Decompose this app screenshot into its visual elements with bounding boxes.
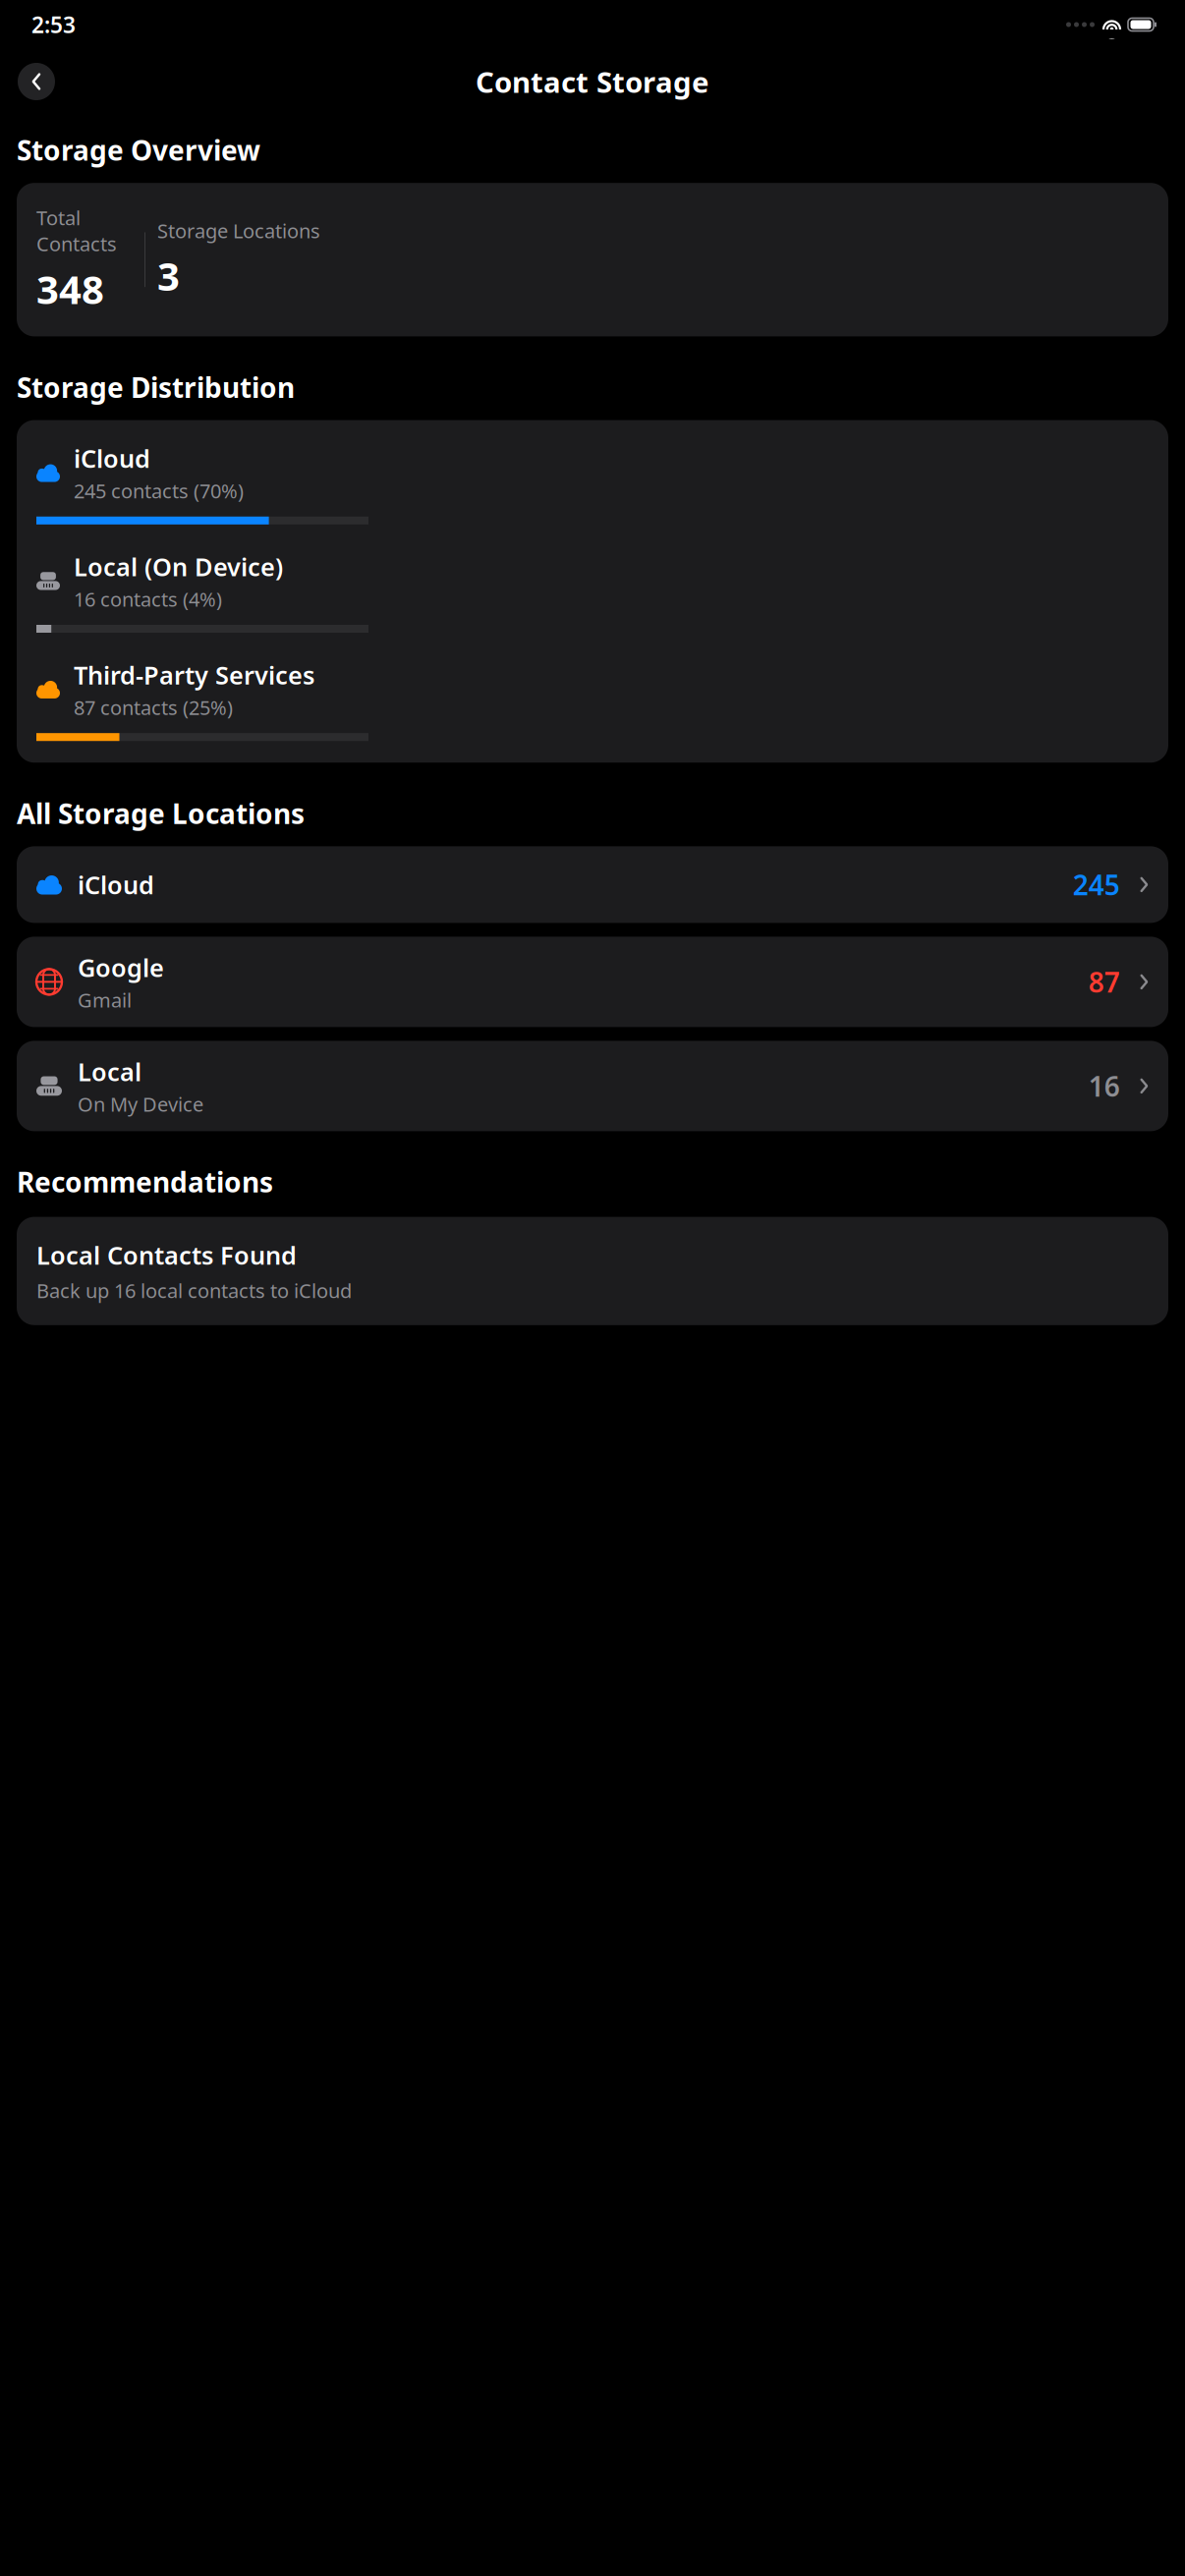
staticText: 2:53 <box>31 10 76 39</box>
staticText: Recommendations <box>17 1164 273 1200</box>
staticText: 348 <box>36 263 104 315</box>
staticText: Local <box>78 1055 141 1088</box>
staticText: Local (On Device) <box>74 550 283 583</box>
staticText: On My Device <box>78 1091 203 1117</box>
staticText: Third-Party Services <box>74 658 314 691</box>
staticText: Storage Overview <box>17 132 260 168</box>
staticText: Contact Storage <box>476 62 709 101</box>
staticText: iCloud <box>74 442 150 475</box>
staticText: 16 contacts (4%) <box>74 586 222 612</box>
staticText: Back up 16 local contacts to iCloud <box>36 1277 352 1304</box>
staticText: iCloud <box>78 868 154 901</box>
staticText: Storage Distribution <box>17 369 295 405</box>
staticText: Storage Locations <box>157 218 320 244</box>
staticText: 87 contacts (25%) <box>74 694 233 720</box>
staticText: Local Contacts Found <box>36 1238 297 1271</box>
button[interactable]: Local Contacts Found <box>17 1217 1168 1325</box>
button[interactable]: Back <box>18 63 55 100</box>
staticText: 245 contacts (70%) <box>74 478 244 504</box>
staticText: Total Contacts <box>36 205 117 257</box>
button[interactable]: Google <box>17 937 1168 1027</box>
staticText: Gmail <box>78 987 132 1013</box>
button[interactable]: Local <box>17 1041 1168 1131</box>
staticText: 16 <box>1088 1068 1120 1104</box>
staticText: All Storage Locations <box>17 795 305 832</box>
button[interactable]: iCloud <box>17 846 1168 923</box>
staticText: 87 <box>1088 964 1120 1000</box>
staticText: Google <box>78 951 164 984</box>
staticText: 245 <box>1073 866 1120 903</box>
staticText: 3 <box>157 250 180 302</box>
